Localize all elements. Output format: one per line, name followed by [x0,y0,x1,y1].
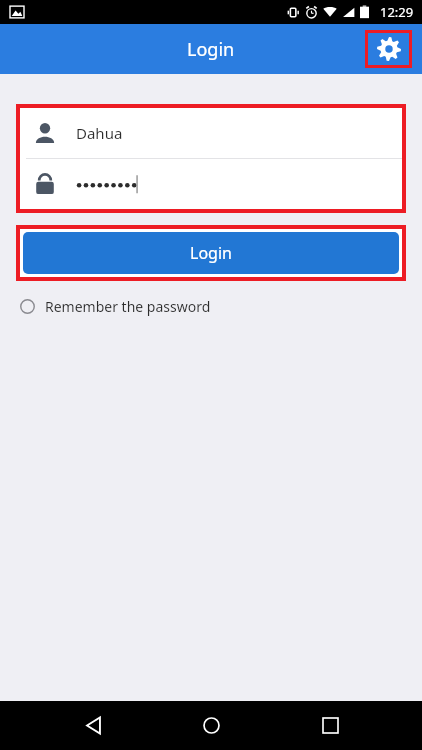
button[interactable]: Home [185,701,237,750]
button[interactable]: Dahua [20,108,402,158]
staticText: Remember the password [45,297,211,316]
button[interactable]: Settings [365,30,412,68]
button[interactable] [20,159,402,209]
staticText: 12:29 [380,3,414,21]
staticText: Login [187,37,235,62]
staticText: Dahua [76,123,123,143]
button[interactable]: Login [23,232,399,274]
staticText: Login [190,242,232,264]
button[interactable]: Remember the password [20,291,211,321]
button[interactable]: Back [67,701,119,750]
button[interactable]: Recents [304,701,356,750]
